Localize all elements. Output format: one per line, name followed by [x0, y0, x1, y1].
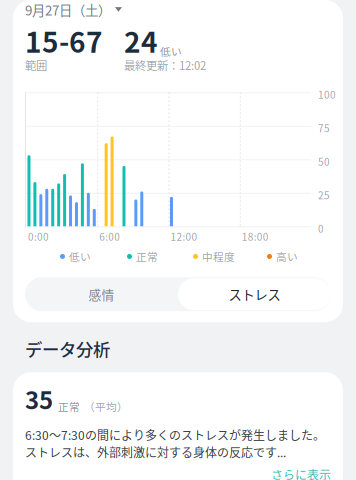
button[interactable]: さらに表示: [25, 466, 331, 480]
staticText: 低い: [69, 249, 91, 264]
staticText: さらに表示: [271, 466, 331, 480]
staticText: 6:30〜7:30の間により多くのストレスが発生しました。ストレスは、外部刺激に…: [25, 426, 325, 461]
staticText: 中程度: [202, 249, 235, 264]
staticText: 0:00: [28, 229, 49, 244]
button[interactable]: 9月27日（土）: [25, 0, 122, 19]
staticText: 正常: [58, 399, 80, 414]
staticText: 低い: [160, 43, 182, 59]
staticText: 高い: [276, 249, 298, 264]
button[interactable]: 感情: [25, 277, 178, 311]
staticText: 15-67: [25, 20, 103, 61]
staticText: 18:00: [242, 229, 269, 244]
staticText: ストレス: [228, 284, 280, 304]
button[interactable]: ストレス: [178, 278, 331, 310]
staticText: 12:00: [170, 229, 197, 244]
staticText: 100: [318, 87, 336, 102]
staticText: 範囲: [25, 57, 47, 73]
staticText: 75: [318, 121, 330, 135]
staticText: 正常: [136, 249, 158, 264]
staticText: 24: [124, 20, 158, 61]
staticText: （平均）: [84, 399, 128, 414]
staticText: 最終更新：12:02: [124, 57, 206, 73]
staticText: 6:00: [99, 229, 120, 244]
staticText: 9月27日（土）: [25, 0, 111, 19]
staticText: 50: [318, 154, 330, 169]
staticText: 感情: [88, 285, 114, 303]
staticText: データ分析: [25, 336, 110, 361]
staticText: 35: [25, 381, 53, 416]
staticText: 0: [318, 221, 324, 236]
staticText: 25: [318, 188, 330, 202]
